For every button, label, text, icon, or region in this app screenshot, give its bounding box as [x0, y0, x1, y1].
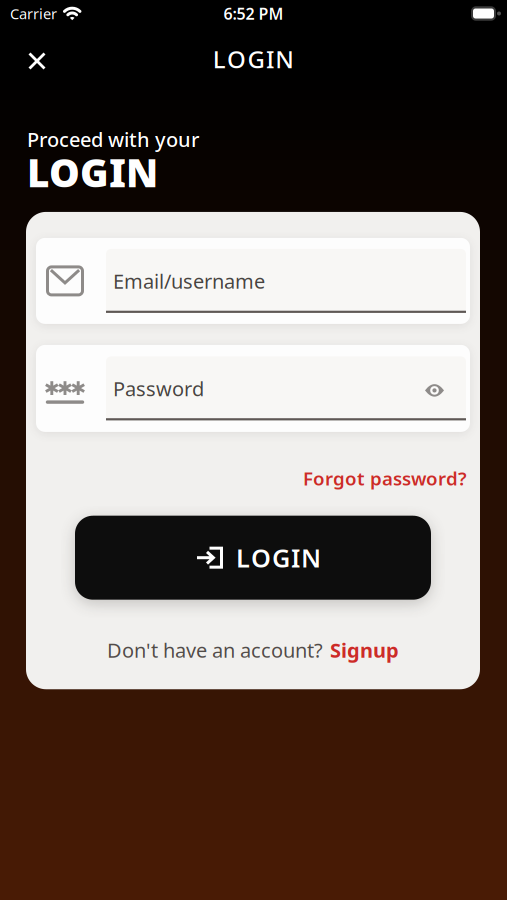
button[interactable]: Forgot password? — [303, 466, 480, 491]
staticText: O — [251, 541, 271, 574]
button[interactable]: L — [75, 516, 431, 600]
staticText: Don't have an account? — [107, 637, 323, 663]
staticText: Proceed with your — [27, 126, 199, 153]
button[interactable]: Show password — [425, 382, 466, 395]
staticText: N — [301, 541, 321, 574]
staticText: Email/username — [113, 268, 265, 294]
staticText: Forgot password? — [303, 466, 467, 491]
staticText: G — [272, 541, 290, 574]
staticText: L — [236, 541, 250, 574]
staticText: I — [291, 541, 300, 574]
staticText: I — [266, 43, 274, 75]
staticText: N — [275, 43, 294, 75]
button[interactable]: Signup — [330, 637, 399, 663]
staticText: O — [227, 43, 246, 75]
staticText: 6:52 PM — [223, 3, 283, 24]
staticText: L — [213, 43, 226, 75]
staticText: Signup — [330, 637, 399, 663]
staticText: Carrier — [10, 4, 57, 23]
staticText: G — [247, 43, 264, 75]
staticText: LOGIN — [27, 147, 158, 198]
button[interactable]: Close — [18, 42, 56, 80]
staticText: Password — [113, 375, 204, 402]
